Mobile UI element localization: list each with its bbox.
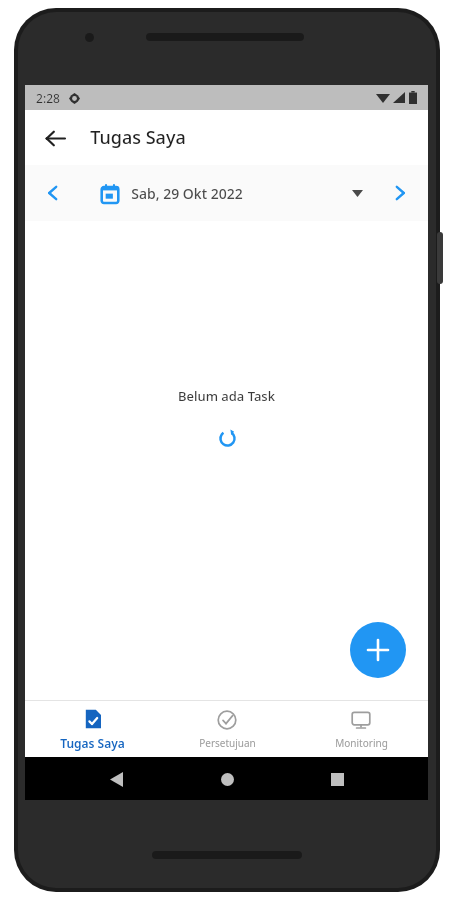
button[interactable]: Previous day [33,173,73,213]
button[interactable]: Choose date [340,176,374,210]
button[interactable]: Home [208,760,246,798]
button[interactable]: Monitoring [294,703,428,756]
button[interactable]: Recents [318,760,356,798]
staticText: Sab, 29 Okt 2022 [131,184,243,203]
staticText: Persetujuan [199,736,256,750]
button[interactable]: Sab, 29 Okt 2022 [97,178,247,209]
button[interactable]: Add task [350,622,406,678]
button[interactable]: Back [97,760,135,798]
staticText: Tugas Saya [90,125,186,150]
staticText: 2:28 [36,90,60,106]
button[interactable]: Refresh [210,421,244,455]
button[interactable]: Tugas Saya [25,702,160,757]
staticText: Belum ada Task [178,387,275,405]
button[interactable]: Persetujuan [160,703,294,756]
staticText: Tugas Saya [60,735,125,751]
button[interactable]: Back [33,116,77,160]
staticText: Monitoring [335,736,388,750]
button[interactable]: Next day [380,173,420,213]
